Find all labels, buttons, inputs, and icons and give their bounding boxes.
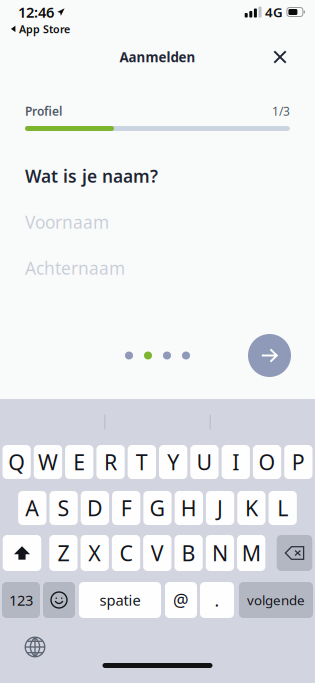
staticText: N xyxy=(212,539,228,567)
staticText: U xyxy=(196,448,212,476)
staticText: A xyxy=(25,494,39,522)
button[interactable]: F xyxy=(112,491,140,525)
staticText: K xyxy=(245,494,258,522)
staticText: App Store xyxy=(19,22,70,36)
staticText: 4G xyxy=(265,3,283,21)
staticText: volgende xyxy=(247,591,305,609)
staticText: D xyxy=(87,494,103,522)
staticText: C xyxy=(119,539,132,567)
button[interactable]: O xyxy=(253,445,281,479)
button[interactable]: W xyxy=(34,445,62,479)
button[interactable]: U xyxy=(190,445,219,479)
staticText: O xyxy=(259,448,276,476)
staticText: S xyxy=(58,494,70,522)
button[interactable]: N xyxy=(206,535,234,571)
button[interactable]: E xyxy=(65,445,93,479)
staticText: F xyxy=(121,494,132,522)
button[interactable]: Volgende xyxy=(248,334,291,377)
button[interactable]: Toetsenbord wisselen xyxy=(19,631,51,663)
staticText: G xyxy=(149,494,165,522)
button[interactable]: I xyxy=(222,445,250,479)
staticText: Z xyxy=(57,539,69,567)
staticText: . xyxy=(214,588,219,611)
staticText: H xyxy=(181,494,197,522)
staticText: 1/3 xyxy=(272,103,290,119)
button[interactable]: 123 xyxy=(2,582,40,618)
button[interactable]: Sluiten xyxy=(264,41,296,73)
button[interactable]: Shift xyxy=(3,535,41,571)
button[interactable]: . xyxy=(200,582,234,618)
button[interactable]: Q xyxy=(2,445,31,479)
button[interactable]: Emoji xyxy=(43,582,75,618)
staticText: W xyxy=(38,448,58,476)
button[interactable]: K xyxy=(237,491,265,525)
button[interactable]: H xyxy=(175,491,203,525)
button[interactable]: spatie xyxy=(79,582,161,618)
staticText: X xyxy=(88,539,101,567)
button[interactable]: X xyxy=(80,535,109,571)
button[interactable]: Y xyxy=(159,445,187,479)
button[interactable]: G xyxy=(143,491,172,525)
staticText: Q xyxy=(8,448,25,476)
staticText: M xyxy=(242,539,261,567)
button[interactable]: Z xyxy=(49,535,77,571)
staticText: L xyxy=(277,494,288,522)
button[interactable]: L xyxy=(269,491,297,525)
staticText: 123 xyxy=(9,590,33,610)
staticText: T xyxy=(136,448,148,476)
staticText: 12:46 xyxy=(18,2,54,22)
button[interactable]: P xyxy=(284,445,312,479)
staticText: J xyxy=(217,494,223,522)
staticText: B xyxy=(182,539,196,567)
staticText: E xyxy=(73,448,85,476)
staticText: I xyxy=(232,448,239,476)
button[interactable]: R xyxy=(96,445,125,479)
button[interactable]: App Store xyxy=(0,19,70,35)
button[interactable]: @ xyxy=(165,582,197,618)
button[interactable]: C xyxy=(112,535,140,571)
staticText: Profiel xyxy=(25,103,62,119)
staticText: @ xyxy=(173,588,189,611)
staticText: Aanmelden xyxy=(119,48,195,66)
button[interactable]: T xyxy=(128,445,156,479)
staticText: V xyxy=(151,539,164,567)
staticText: P xyxy=(292,448,305,476)
staticText: Y xyxy=(167,448,179,476)
button[interactable]: A xyxy=(18,491,46,525)
button[interactable]: J xyxy=(206,491,234,525)
staticText: Voornaam xyxy=(25,210,109,233)
staticText: Achternaam xyxy=(25,256,125,279)
staticText: Wat is je naam? xyxy=(25,164,158,187)
button[interactable]: Wissen xyxy=(277,535,312,571)
button[interactable]: S xyxy=(49,491,78,525)
button[interactable]: volgende xyxy=(239,582,313,618)
button[interactable]: B xyxy=(174,535,203,571)
button[interactable]: M xyxy=(237,535,265,571)
button[interactable]: V xyxy=(143,535,171,571)
staticText: spatie xyxy=(99,590,140,610)
button[interactable]: D xyxy=(81,491,109,525)
staticText: R xyxy=(104,448,117,476)
